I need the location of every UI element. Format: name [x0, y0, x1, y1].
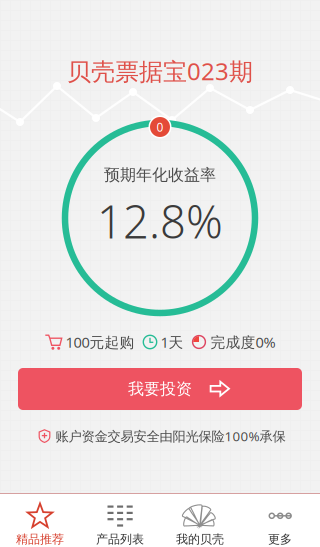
staticText: 我要投资 — [128, 379, 192, 399]
button[interactable]: 产品列表 — [80, 494, 160, 547]
staticText: 更多 — [268, 532, 292, 547]
staticText: 12.8% — [97, 191, 223, 251]
staticText: 账户资金交易安全由阳光保险100%承保 — [55, 427, 285, 445]
button[interactable]: 精品推荐 — [0, 494, 80, 547]
staticText: 产品列表 — [96, 532, 144, 547]
staticText: 预期年化收益率 — [104, 165, 216, 185]
staticText: 0 — [156, 119, 163, 135]
staticText: 我的贝壳 — [176, 532, 224, 547]
staticText: 100元起购 — [65, 332, 134, 352]
staticText: 完成度0% — [210, 332, 275, 352]
staticText: 精品推荐 — [16, 532, 64, 547]
button[interactable]: 我的贝壳 — [160, 494, 240, 547]
button[interactable]: 更多 — [240, 494, 320, 547]
staticText: 1天 — [160, 332, 183, 352]
button[interactable]: 我要投资 — [18, 368, 302, 410]
staticText: 贝壳票据宝023期 — [67, 55, 253, 87]
